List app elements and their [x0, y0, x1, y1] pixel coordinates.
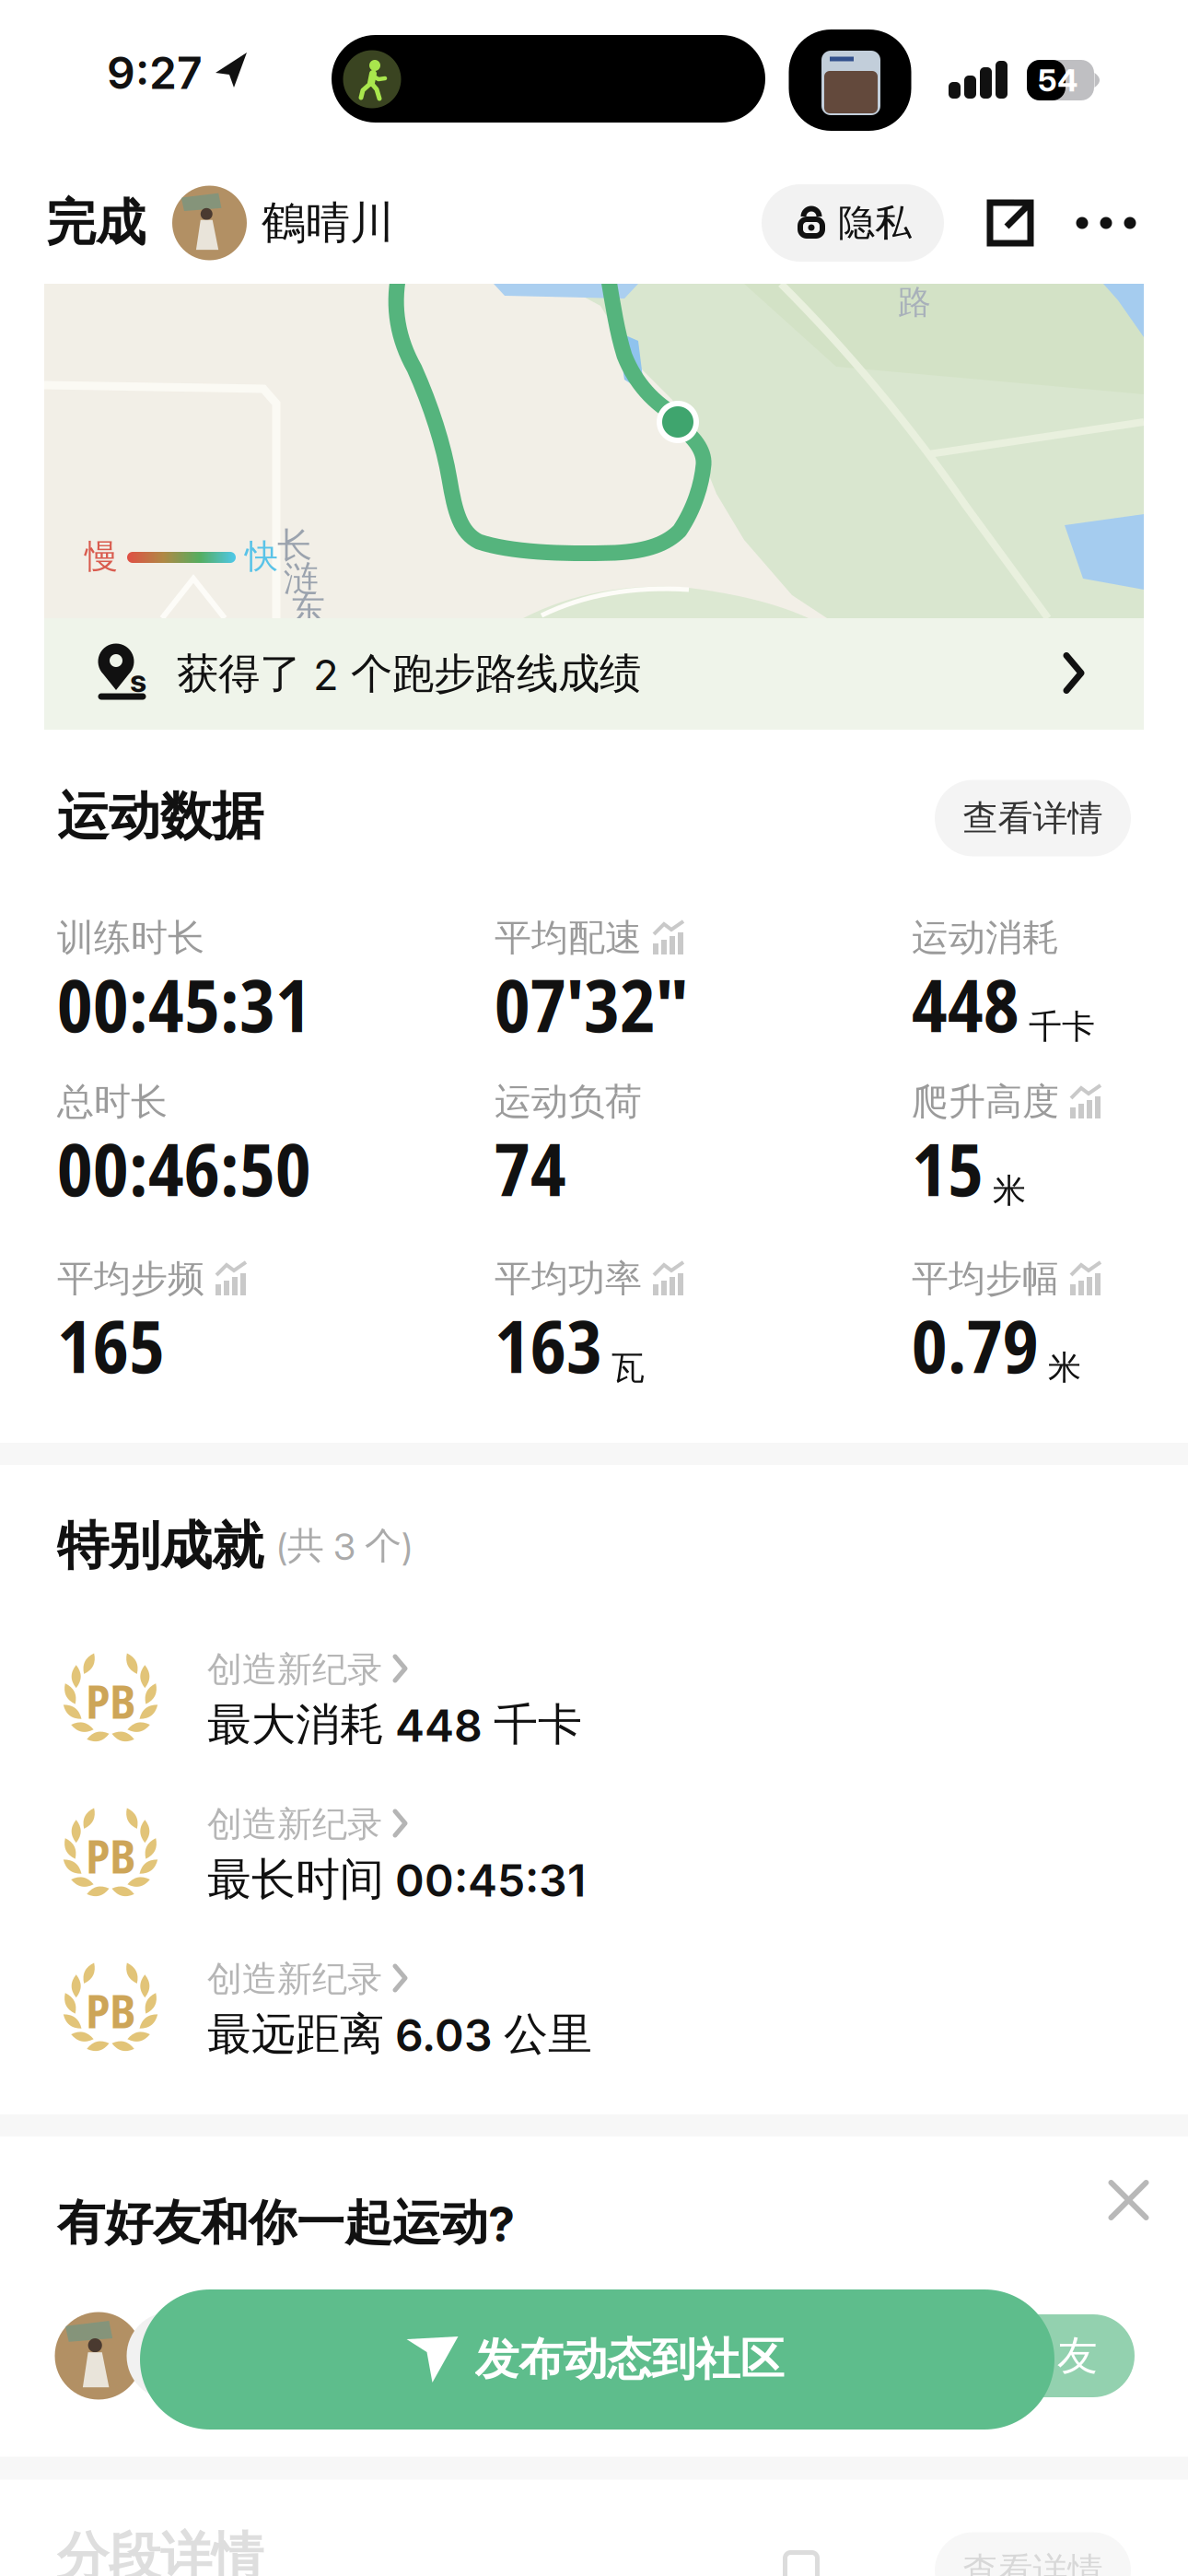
- button[interactable]: 隐私: [762, 184, 944, 262]
- staticText: 米: [993, 1170, 1026, 1212]
- staticText: 平均步频: [57, 1256, 204, 1302]
- staticText: 路: [898, 281, 931, 323]
- staticText: 最远距离 6.03 公里: [207, 2006, 592, 2062]
- staticText: 00:45:31: [57, 955, 311, 1053]
- staticText: s: [130, 662, 146, 700]
- staticText: 查看详情: [963, 2548, 1103, 2576]
- staticText: 平均功率: [495, 1256, 642, 1302]
- staticText: 平均步幅: [912, 1256, 1059, 1302]
- staticText: PB: [86, 1979, 135, 2042]
- staticText: 448: [912, 955, 1019, 1053]
- staticText: 快: [245, 536, 278, 577]
- staticText: 总时长: [57, 1079, 168, 1125]
- staticText: 特别成就: [57, 1513, 263, 1578]
- staticText: 平均配速: [495, 915, 642, 961]
- staticText: 163: [495, 1296, 602, 1394]
- button[interactable]: 创造新纪录: [207, 1957, 668, 2001]
- staticText: 训练时长: [57, 915, 204, 961]
- staticText: 有好友和你一起运动?: [57, 2193, 515, 2253]
- staticText: 查看详情: [963, 796, 1103, 840]
- staticText: 分段详情: [57, 2524, 263, 2576]
- button[interactable]: 创造新纪录: [207, 1647, 668, 1692]
- button[interactable]: More: [1076, 217, 1136, 229]
- staticText: PB: [86, 1824, 135, 1887]
- staticText: 15: [912, 1119, 984, 1217]
- staticText: 创造新纪录: [207, 1957, 382, 2001]
- button[interactable]: 完成: [46, 192, 230, 254]
- staticText: 长: [277, 523, 312, 568]
- staticText: 07'32": [495, 955, 688, 1053]
- staticText: 9:27: [107, 46, 203, 100]
- staticText: 74: [495, 1119, 566, 1217]
- staticText: 获得了 2 个跑步路线成绩: [177, 648, 641, 700]
- staticText: 165: [57, 1296, 165, 1394]
- button[interactable]: 发布动态到社区: [140, 2289, 1054, 2430]
- staticText: 友: [1057, 2330, 1098, 2381]
- staticText: (共 3 个): [276, 1523, 413, 1569]
- button[interactable]: 创造新纪录: [207, 1802, 668, 1846]
- staticText: 涟: [284, 557, 319, 601]
- button[interactable]: 查看详情: [935, 780, 1131, 856]
- button[interactable]: Close: [1111, 2183, 1146, 2218]
- staticText: 发布动态到社区: [475, 2332, 784, 2387]
- staticText: 东: [290, 588, 325, 632]
- staticText: 运动消耗: [912, 915, 1059, 961]
- staticText: 隐私: [838, 200, 912, 246]
- staticText: 瓦: [611, 1347, 645, 1389]
- staticText: 鶴晴川: [262, 195, 394, 251]
- button[interactable]: s: [44, 618, 1144, 730]
- button[interactable]: 查看详情: [935, 2532, 1131, 2576]
- staticText: 最长时间 00:45:31: [207, 1852, 586, 1907]
- staticText: 运动负荷: [495, 1079, 642, 1125]
- staticText: 米: [1048, 1347, 1081, 1389]
- staticText: 00:46:50: [57, 1119, 311, 1217]
- button[interactable]: 鶴晴川: [172, 186, 633, 260]
- staticText: PB: [86, 1669, 135, 1732]
- staticText: 爬升高度: [912, 1079, 1059, 1125]
- button[interactable]: Share: [986, 199, 1034, 247]
- staticText: 最大消耗 448 千卡: [207, 1697, 582, 1753]
- staticText: 运动数据: [57, 784, 263, 849]
- staticText: 0.79: [912, 1296, 1039, 1394]
- staticText: 完成: [46, 192, 146, 254]
- staticText: 千卡: [1029, 1006, 1095, 1048]
- staticText: 54: [1038, 61, 1078, 99]
- staticText: 创造新纪录: [207, 1802, 382, 1846]
- staticText: 创造新纪录: [207, 1647, 382, 1692]
- staticText: 慢: [85, 536, 118, 577]
- button[interactable]: 友: [914, 2314, 1135, 2397]
